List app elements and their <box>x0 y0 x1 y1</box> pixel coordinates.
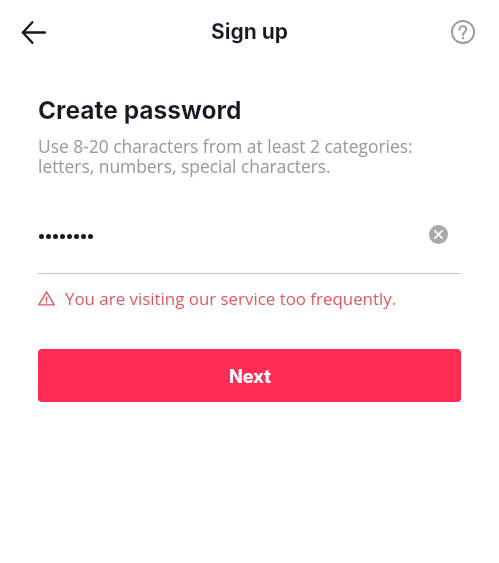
button[interactable]: Help <box>440 9 485 54</box>
button[interactable]: Back <box>11 10 56 55</box>
staticText: Sign up <box>0 19 499 44</box>
button[interactable]: Clear <box>425 221 451 247</box>
button[interactable]: Next <box>38 349 461 402</box>
staticText: Next <box>229 365 271 387</box>
staticText: You are visiting our service too frequen… <box>65 287 397 310</box>
staticText: Create password <box>38 95 242 125</box>
staticText: Use 8-20 characters from at least 2 cate… <box>38 134 413 179</box>
